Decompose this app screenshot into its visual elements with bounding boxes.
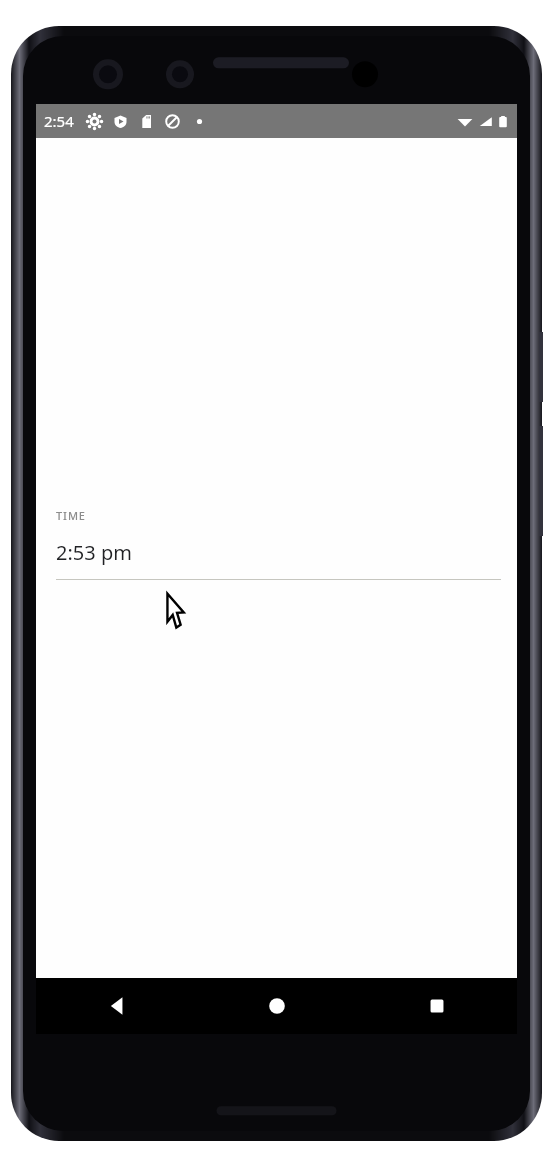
staticText: 2:53 pm [56,539,132,566]
staticText: 2:54 [44,111,74,131]
staticText: TIME [56,508,86,523]
button[interactable]: Recents [357,978,517,1034]
button[interactable]: Back [36,978,197,1034]
button[interactable]: Home [197,978,357,1034]
button[interactable]: TIME [36,508,517,580]
